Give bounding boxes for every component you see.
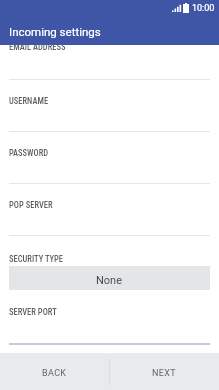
staticText: EMAIL ADDRESS bbox=[9, 42, 66, 52]
staticText: SERVER PORT bbox=[9, 307, 57, 317]
staticText: None bbox=[96, 274, 123, 287]
staticText: PASSWORD bbox=[9, 148, 49, 158]
button[interactable]: NEXT bbox=[109, 355, 219, 390]
staticText: Incoming settings bbox=[9, 25, 101, 38]
staticText: NEXT bbox=[152, 368, 176, 379]
other: Signal strength bbox=[172, 3, 182, 12]
staticText: BACK bbox=[42, 368, 67, 379]
button[interactable]: None bbox=[9, 266, 210, 290]
staticText: SECURITY TYPE bbox=[9, 254, 64, 264]
button[interactable]: BACK bbox=[0, 355, 109, 390]
other: Battery bbox=[183, 3, 189, 13]
staticText: POP SERVER bbox=[9, 200, 53, 210]
staticText: USERNAME bbox=[9, 96, 49, 106]
staticText: 10:00 bbox=[192, 3, 215, 14]
